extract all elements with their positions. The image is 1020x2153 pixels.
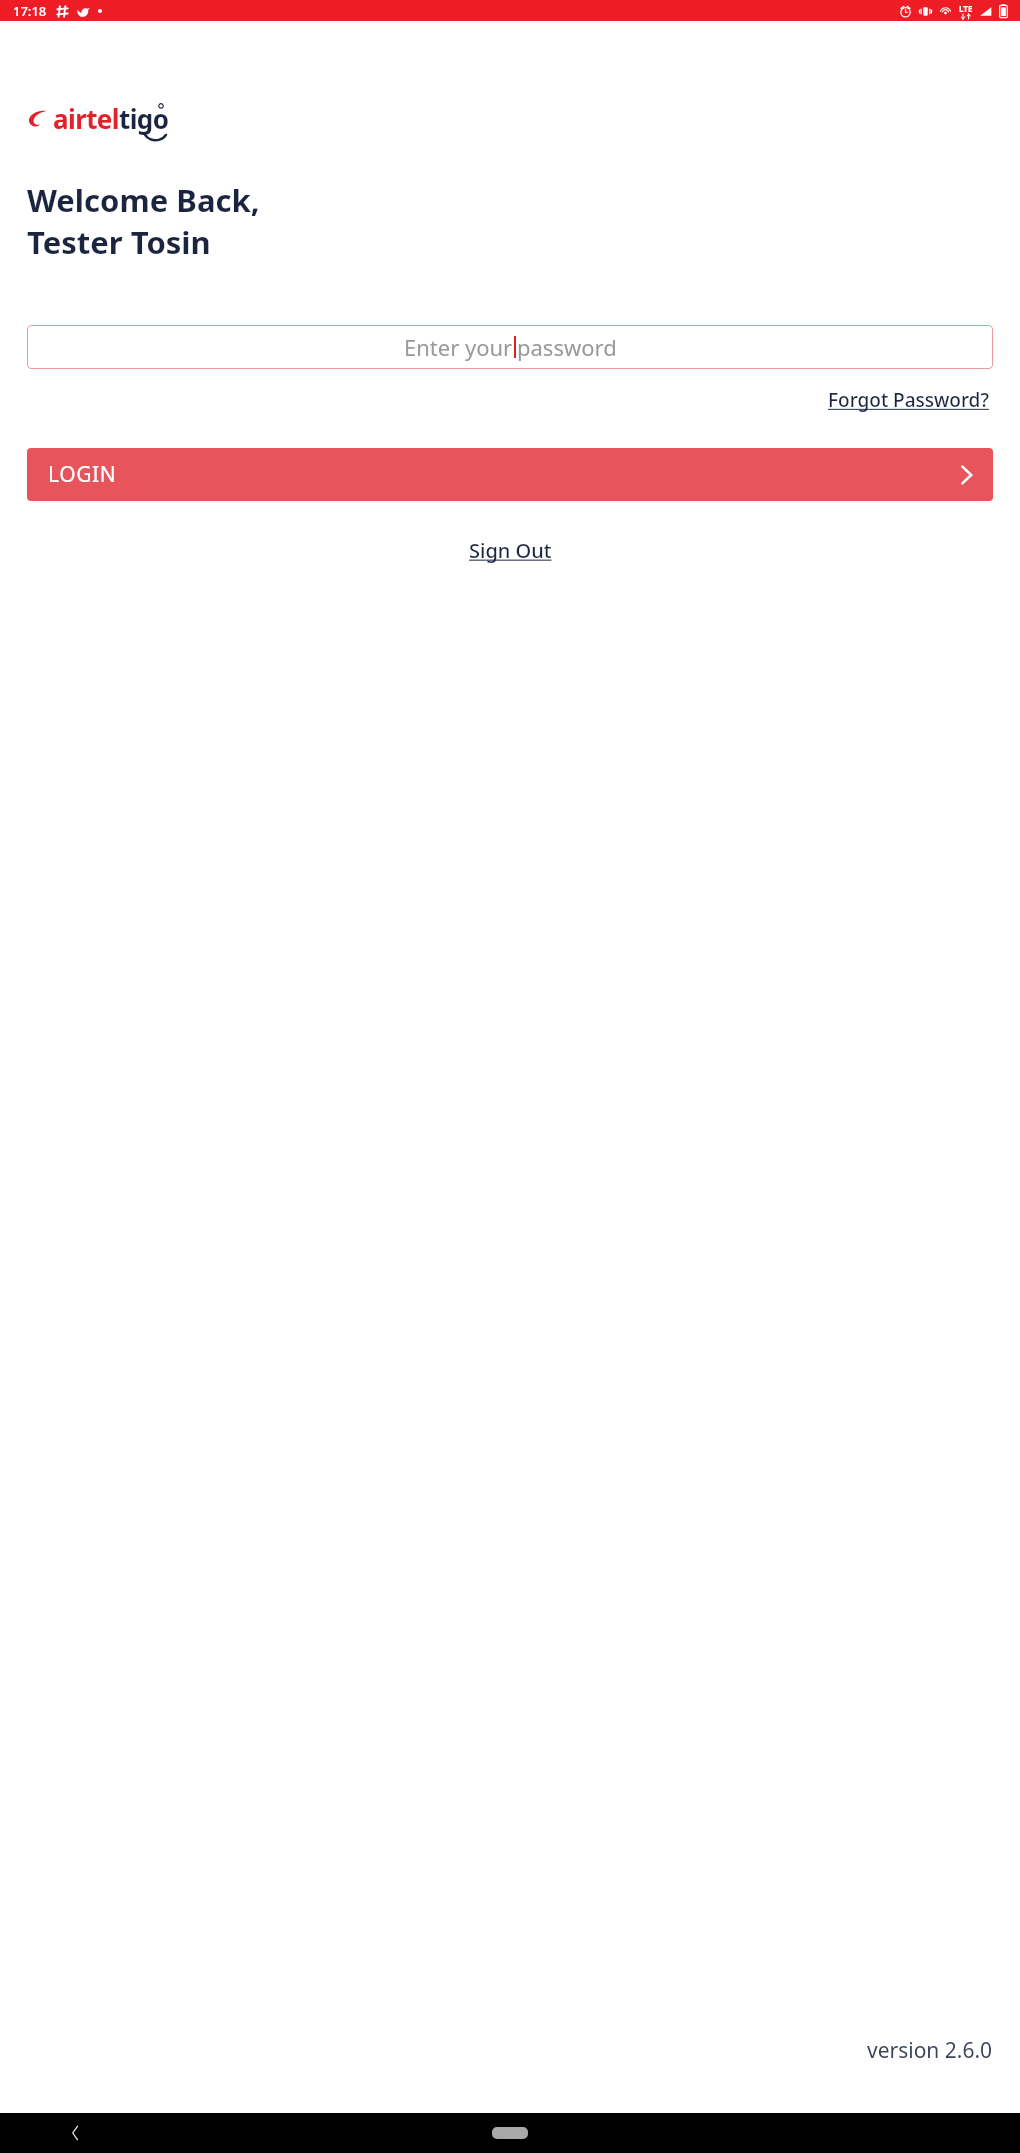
staticText: Enter your: [404, 332, 513, 362]
button[interactable]: Back: [60, 2118, 90, 2148]
staticText: tigo: [119, 101, 169, 136]
button[interactable]: Home: [486, 2122, 534, 2144]
staticText: LTE: [959, 3, 973, 14]
button[interactable]: LOGIN: [27, 448, 993, 501]
button[interactable]: Sign Out: [461, 531, 560, 570]
staticText: Sign Out: [469, 537, 552, 564]
button[interactable]: Enter your: [27, 325, 993, 369]
staticText: password: [517, 332, 617, 362]
button[interactable]: Forgot Password?: [824, 381, 993, 419]
staticText: airtel: [53, 101, 119, 136]
staticText: Welcome Back,: [27, 179, 260, 221]
staticText: 17:18: [13, 2, 47, 20]
staticText: version 2.6.0: [867, 2036, 993, 2065]
staticText: Tester Tosin: [27, 221, 211, 263]
staticText: Forgot Password?: [828, 387, 989, 413]
staticText: LOGIN: [48, 460, 117, 489]
